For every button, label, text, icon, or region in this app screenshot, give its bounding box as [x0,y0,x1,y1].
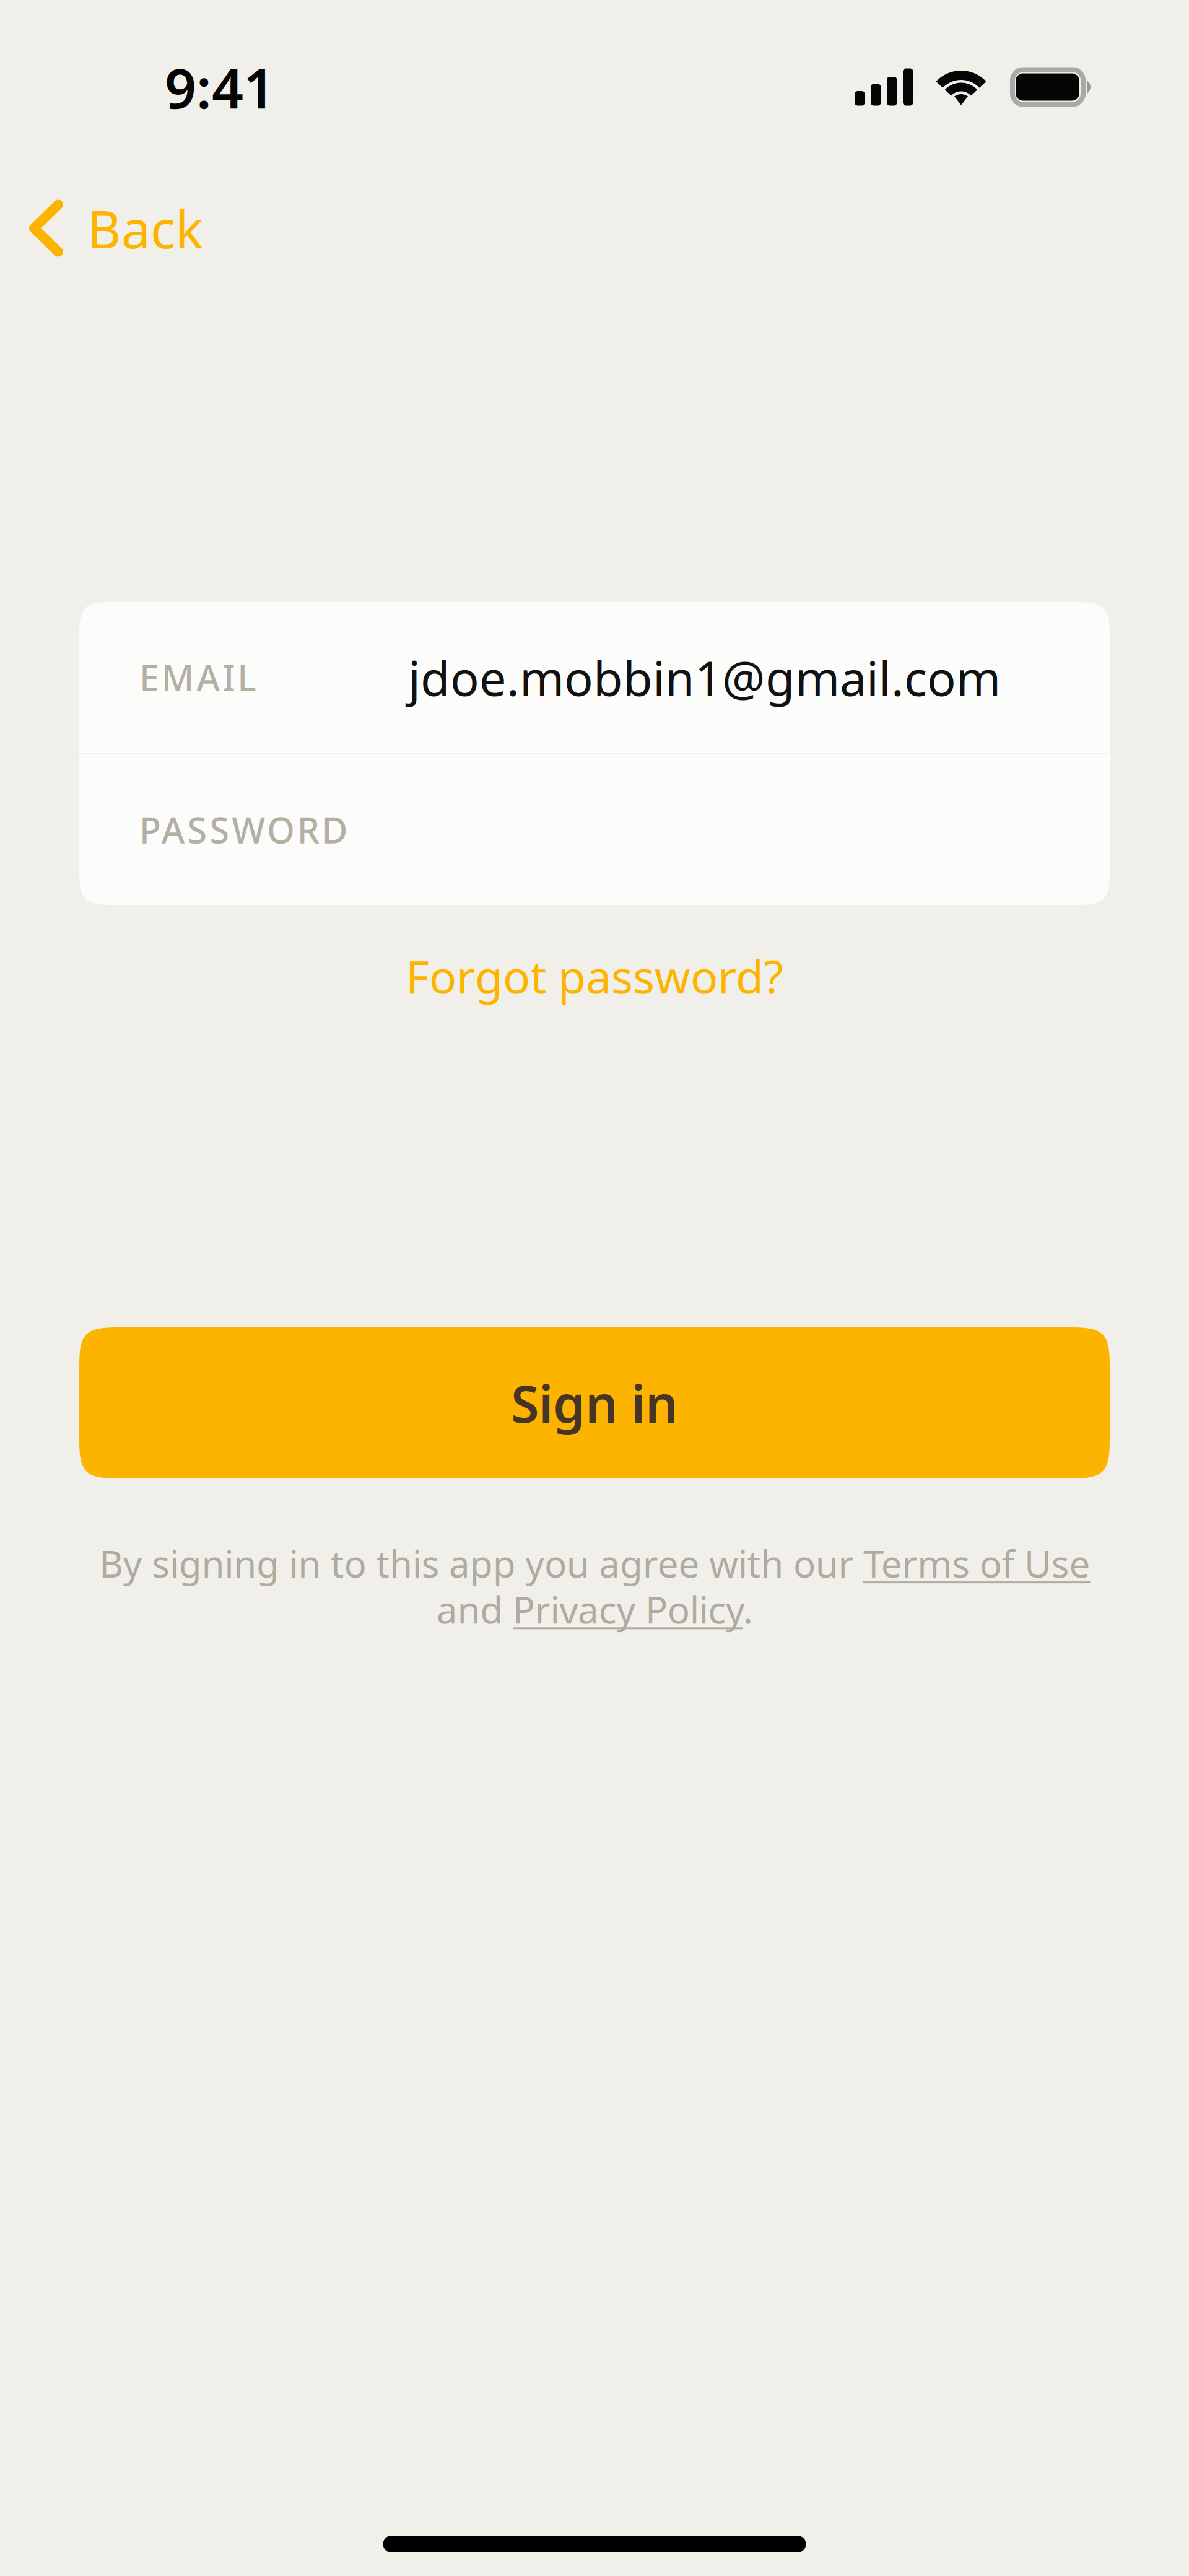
staticText: Forgot password? [406,946,783,1006]
staticText: PASSWORD [139,806,348,853]
staticText: Back [87,194,203,263]
staticText: jdoe.mobbin1@gmail.com [408,646,1001,709]
button[interactable]: Sign in [79,1327,1110,1478]
button[interactable]: Forgot password? [0,905,1189,1029]
staticText: By signing in to this app you agree with… [99,1539,1090,1634]
staticText: EMAIL [139,654,257,701]
button[interactable]: Back [0,174,1189,282]
staticText: Sign in [511,1369,678,1437]
staticText: 9:41 [165,50,275,124]
